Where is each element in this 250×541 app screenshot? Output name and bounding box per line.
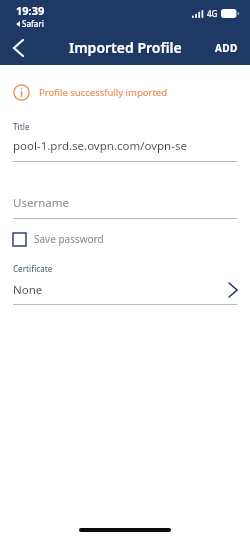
staticText: Title [13,121,30,132]
button[interactable]: Back [0,30,36,65]
staticText: Certificate [13,263,53,274]
button[interactable]: ADD [203,33,250,63]
staticText: Username [13,195,69,211]
staticText: 4G [207,8,218,19]
staticText: 19:39 [16,3,45,18]
staticText: Imported Profile [69,38,182,57]
staticText: pool-1.prd.se.ovpn.com/ovpn-se [13,138,187,154]
staticText: Save password [34,232,104,246]
button[interactable]: Save password [13,232,104,246]
staticText: ADD [215,41,238,55]
staticText: Profile successfully imported [39,86,168,99]
staticText: None [13,282,43,298]
staticText: Safari [22,18,44,29]
button[interactable]: Certificate [13,263,237,305]
other: Choose certificate [229,283,237,297]
